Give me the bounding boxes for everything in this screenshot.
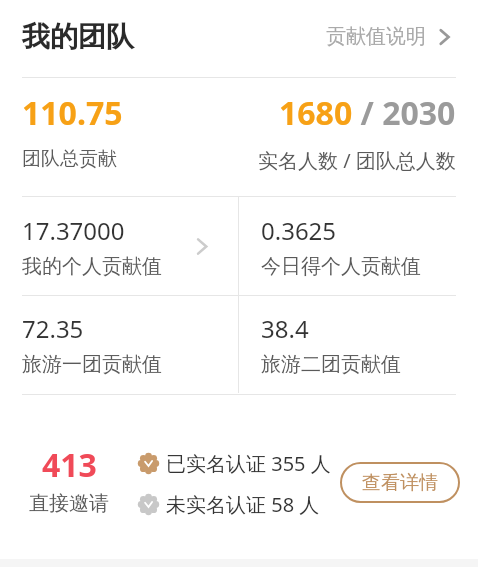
staticText: 0.3625	[261, 214, 337, 247]
staticText: 未实名认证 58 人	[166, 491, 320, 518]
staticText: 1680 / 2030	[279, 91, 456, 135]
staticText: 38.4	[261, 312, 309, 345]
staticText: 今日得个人贡献值	[261, 254, 421, 279]
staticText: 413	[42, 443, 97, 487]
staticText: 查看详情	[362, 471, 438, 495]
staticText: 旅游二团贡献值	[261, 352, 401, 377]
staticText: 72.35	[22, 312, 84, 345]
button[interactable]: 17.37000	[0, 197, 238, 295]
button[interactable]: 贡献值说明	[326, 24, 452, 49]
staticText: 已实名认证 355 人	[166, 450, 331, 477]
staticText: 实名人数 / 团队总人数	[258, 147, 456, 174]
staticText: 团队总贡献	[22, 147, 117, 171]
staticText: 贡献值说明	[326, 24, 426, 49]
staticText: 17.37000	[22, 214, 125, 247]
staticText: 110.75	[22, 91, 123, 135]
staticText: 直接邀请	[29, 491, 109, 516]
staticText: 旅游一团贡献值	[22, 352, 162, 377]
staticText: 我的个人贡献值	[22, 254, 162, 279]
button[interactable]: 查看详情	[340, 462, 460, 503]
staticText: 我的团队	[22, 19, 134, 54]
